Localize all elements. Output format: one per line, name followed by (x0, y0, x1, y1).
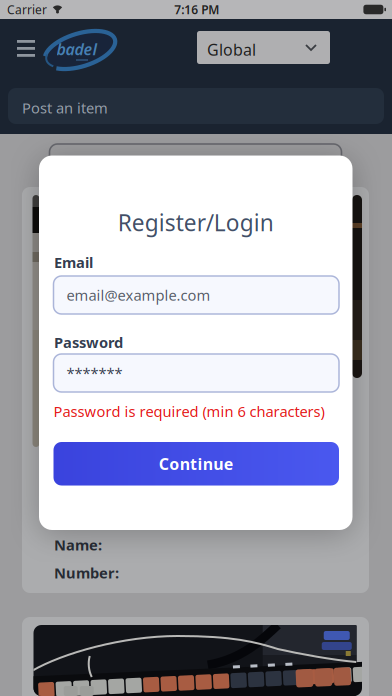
staticText: Password (54, 332, 123, 352)
staticText: Number: (54, 563, 119, 582)
staticText: Register/Login (118, 207, 274, 238)
staticText: Password is required (min 6 characters) (53, 401, 324, 421)
staticText: Name: (54, 535, 102, 554)
staticText: ******* (66, 363, 122, 383)
staticText: 7:16 PM (174, 1, 219, 17)
staticText: Post an item (22, 98, 108, 117)
button[interactable]: Region: Global (197, 31, 330, 64)
staticText: badel (56, 38, 97, 60)
button[interactable]: Continue (53, 442, 339, 485)
button[interactable]: Email (53, 276, 339, 314)
staticText: Carrier (7, 1, 47, 17)
staticText: email@example.com (66, 285, 210, 305)
button[interactable]: Menu (12, 35, 40, 62)
button[interactable]: Post an item (8, 88, 384, 124)
button[interactable]: Password (53, 354, 339, 392)
staticText: Continue (159, 453, 234, 474)
staticText: Email (54, 252, 93, 272)
staticText: Global (207, 39, 256, 60)
